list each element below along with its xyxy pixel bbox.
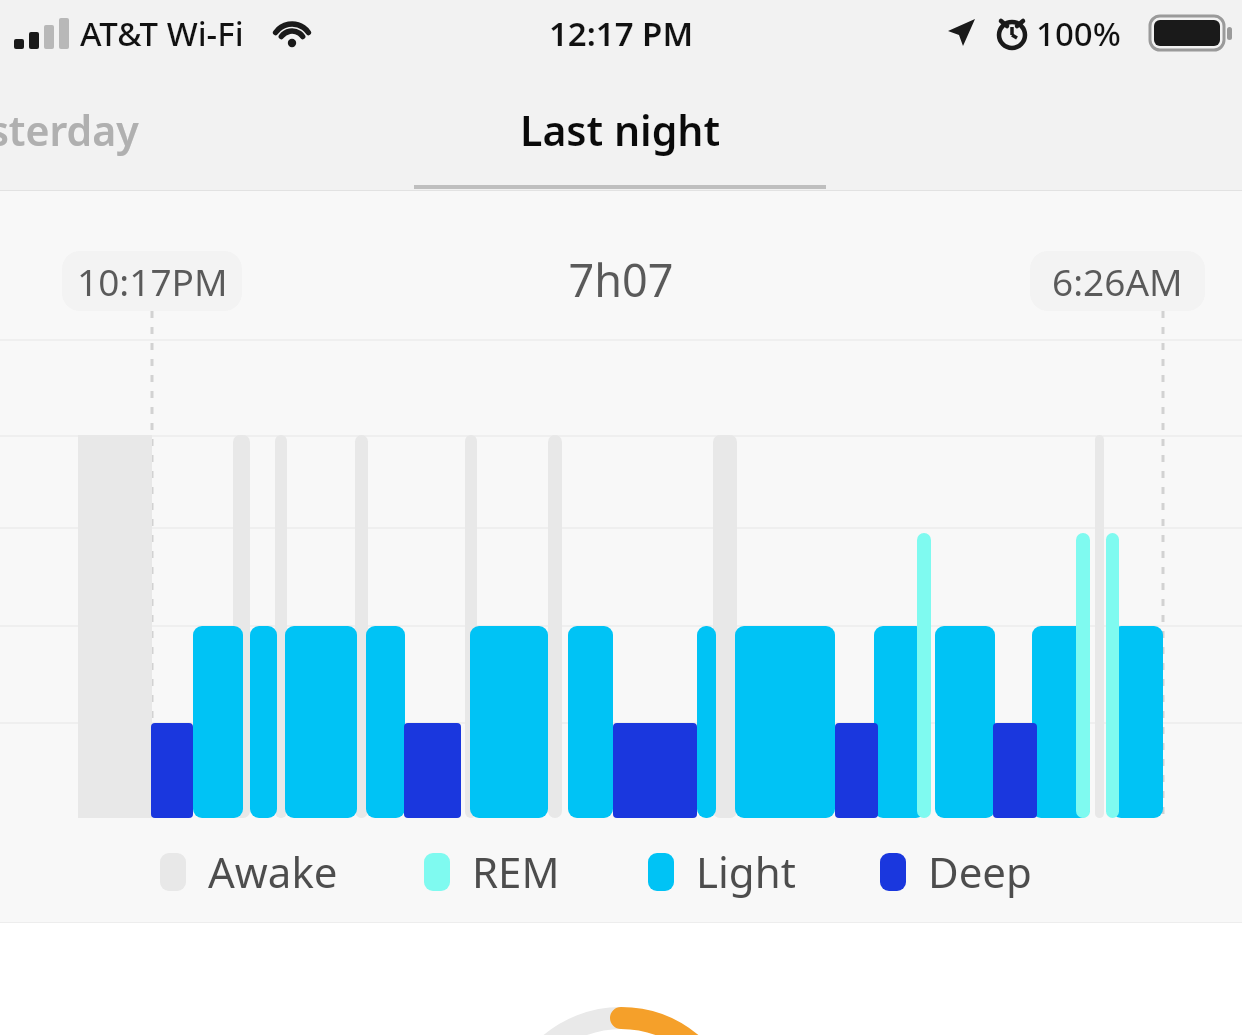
button[interactable]: Deep (880, 843, 1032, 900)
staticText: 10:17PM (77, 256, 228, 306)
staticText: REM (472, 843, 560, 900)
button[interactable]: Last night (414, 74, 826, 186)
button[interactable]: 6:26AM (1030, 251, 1205, 311)
staticText: Yesterday (0, 102, 139, 158)
staticText: 100% (1036, 11, 1121, 56)
staticText: Light (696, 843, 796, 900)
staticText: Deep (928, 843, 1032, 900)
button[interactable]: Light (648, 843, 796, 900)
staticText: Last night (520, 102, 721, 158)
staticText: AT&T Wi-Fi (80, 11, 244, 56)
button[interactable]: REM (424, 843, 560, 900)
staticText: Awake (208, 843, 338, 900)
button[interactable]: Yesterday (0, 74, 220, 186)
staticText: 7h07 (0, 249, 1242, 310)
staticText: 12:17 PM (0, 11, 1242, 56)
staticText: 6:26AM (1052, 256, 1183, 306)
button[interactable]: Awake (160, 843, 338, 900)
button[interactable]: 10:17PM (62, 251, 242, 311)
